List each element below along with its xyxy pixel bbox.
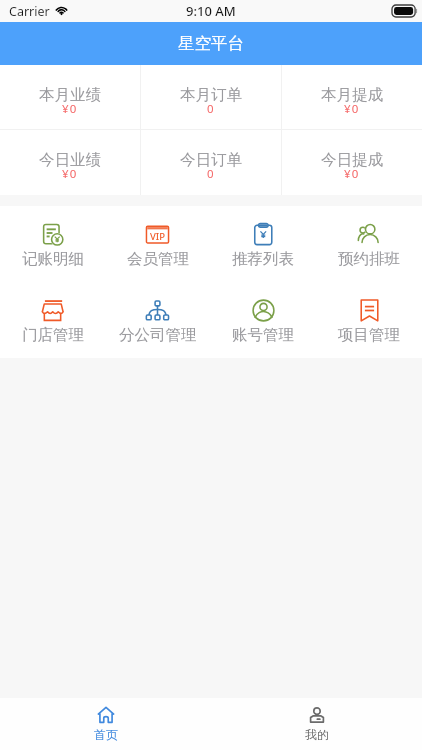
button[interactable]: 今日业绩 bbox=[0, 130, 140, 195]
button[interactable]: 我的 bbox=[211, 698, 422, 750]
staticText: 会员管理 bbox=[127, 249, 189, 269]
staticText: 今日订单 bbox=[180, 150, 242, 170]
staticText: ¥0 bbox=[62, 166, 78, 182]
staticText: 推荐列表 bbox=[232, 249, 294, 269]
staticText: 项目管理 bbox=[338, 325, 400, 345]
staticText: 门店管理 bbox=[22, 325, 84, 345]
staticText: VIP bbox=[150, 230, 166, 243]
staticText: ¥0 bbox=[344, 101, 360, 117]
staticText: 账号管理 bbox=[232, 325, 294, 345]
staticText: 本月订单 bbox=[180, 85, 242, 105]
staticText: 9:10 AM bbox=[186, 2, 236, 20]
button[interactable]: 首页 bbox=[0, 698, 211, 750]
staticText: 记账明细 bbox=[22, 249, 84, 269]
button[interactable]: 门店管理 bbox=[0, 299, 105, 345]
staticText: 今日业绩 bbox=[39, 150, 101, 170]
staticText: 本月业绩 bbox=[39, 85, 101, 105]
staticText: ¥0 bbox=[62, 101, 78, 117]
button[interactable]: 今日订单 bbox=[141, 130, 281, 195]
button[interactable]: 预约排班 bbox=[316, 223, 422, 269]
button[interactable]: 分公司管理 bbox=[105, 299, 210, 345]
staticText: Carrier bbox=[9, 3, 50, 20]
staticText: 本月提成 bbox=[321, 85, 383, 105]
staticText: 预约排班 bbox=[338, 249, 400, 269]
button[interactable]: 项目管理 bbox=[316, 299, 422, 345]
button[interactable]: 本月订单 bbox=[141, 65, 281, 129]
button[interactable]: VIP bbox=[105, 223, 210, 269]
button[interactable]: 今日提成 bbox=[282, 130, 422, 195]
staticText: 我的 bbox=[305, 727, 329, 742]
button[interactable]: 本月提成 bbox=[282, 65, 422, 129]
staticText: 星空平台 bbox=[178, 33, 244, 54]
button[interactable]: 本月业绩 bbox=[0, 65, 140, 129]
button[interactable]: 推荐列表 bbox=[210, 223, 316, 269]
staticText: 0 bbox=[207, 166, 215, 182]
staticText: ¥0 bbox=[344, 166, 360, 182]
staticText: 0 bbox=[207, 101, 215, 117]
staticText: 首页 bbox=[94, 727, 118, 742]
button[interactable]: 记账明细 bbox=[0, 223, 105, 269]
button[interactable]: 账号管理 bbox=[210, 299, 316, 345]
staticText: 分公司管理 bbox=[119, 325, 197, 345]
staticText: 今日提成 bbox=[321, 150, 383, 170]
